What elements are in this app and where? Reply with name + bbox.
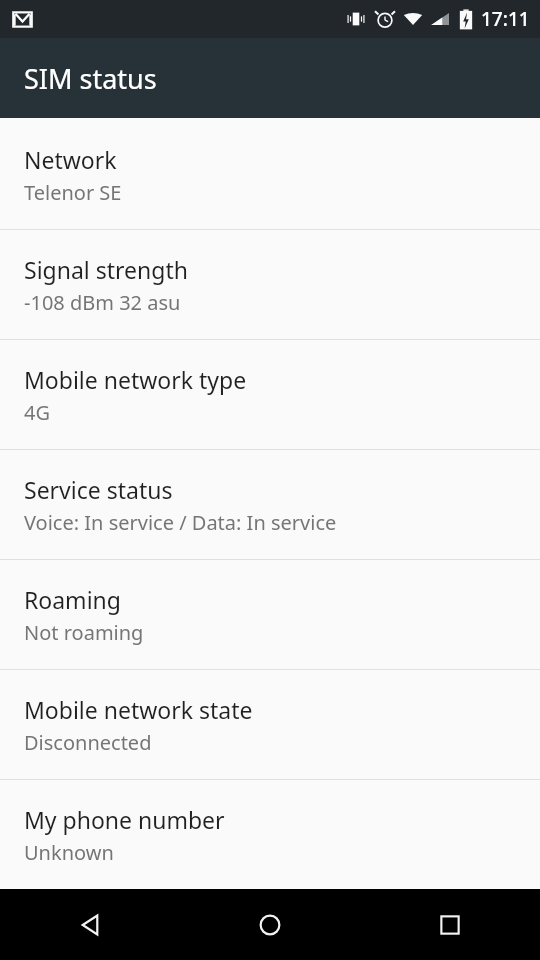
staticText: 17:11 [481, 6, 530, 32]
staticText: Not roaming [24, 619, 144, 646]
staticText: Network [24, 144, 117, 175]
staticText: 4G [24, 399, 50, 426]
button[interactable]: Mobile network type [0, 340, 540, 449]
button[interactable]: Signal strength [0, 230, 540, 339]
button[interactable]: Service status [0, 450, 540, 559]
button[interactable]: My phone number [0, 780, 540, 889]
staticText: -108 dBm 32 asu [24, 289, 181, 316]
staticText: Mobile network type [24, 364, 247, 395]
staticText: Signal strength [24, 254, 188, 285]
button[interactable]: Roaming [0, 560, 540, 669]
button[interactable]: Mobile network state [0, 670, 540, 779]
button[interactable]: Back [0, 889, 180, 960]
button[interactable]: Recent apps [360, 889, 540, 960]
staticText: Mobile network state [24, 694, 253, 725]
staticText: Disconnected [24, 729, 152, 756]
staticText: Telenor SE [24, 179, 122, 206]
staticText: Service status [24, 474, 173, 505]
staticText: My phone number [24, 804, 225, 835]
staticText: Voice: In service / Data: In service [24, 509, 337, 536]
staticText: SIM status [24, 60, 157, 97]
staticText: Roaming [24, 584, 121, 615]
button[interactable]: Home [180, 889, 360, 960]
staticText: Unknown [24, 839, 114, 866]
button[interactable]: Network [0, 120, 540, 229]
